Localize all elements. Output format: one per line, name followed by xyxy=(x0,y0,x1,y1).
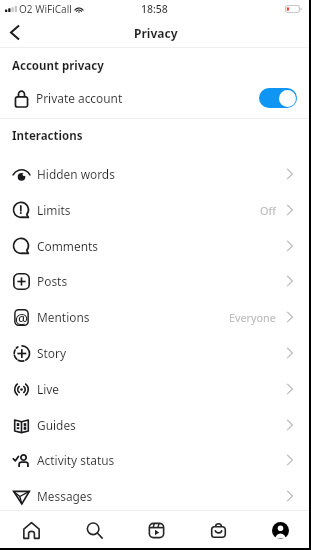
button[interactable]: Live xyxy=(0,371,311,407)
button[interactable]: Comments xyxy=(0,228,311,264)
button[interactable]: @ xyxy=(0,299,311,335)
staticText: Hidden words xyxy=(37,166,115,182)
staticText: Activity status xyxy=(37,452,115,468)
button[interactable]: Shop xyxy=(187,512,249,548)
button[interactable]: Profile xyxy=(249,512,311,548)
button[interactable]: Activity status xyxy=(0,442,311,478)
staticText: @ xyxy=(15,308,29,325)
staticText: Story xyxy=(37,345,66,361)
button[interactable]: Guides xyxy=(0,407,311,443)
staticText: 18:58 xyxy=(141,2,168,16)
button[interactable]: Private account xyxy=(0,86,311,110)
button[interactable]: Posts xyxy=(0,263,311,299)
staticText: Limits xyxy=(37,202,71,218)
button[interactable]: Search xyxy=(63,512,125,548)
staticText: Posts xyxy=(37,273,68,289)
button[interactable]: Home xyxy=(0,512,63,548)
button[interactable]: Reels xyxy=(125,512,187,548)
button[interactable]: Story xyxy=(0,335,311,371)
staticText: Comments xyxy=(37,238,98,254)
staticText: O2 WiFiCall xyxy=(19,2,72,16)
button[interactable]: Messages xyxy=(0,478,311,514)
button[interactable]: Back xyxy=(0,18,30,47)
button[interactable]: Limits xyxy=(0,192,311,228)
button[interactable]: Private account toggle xyxy=(259,88,297,108)
staticText: Guides xyxy=(37,417,76,433)
staticText: Everyone xyxy=(229,310,276,325)
staticText: Private account xyxy=(36,90,123,106)
staticText: Messages xyxy=(37,488,93,504)
staticText: Interactions xyxy=(12,128,83,144)
staticText: Account privacy xyxy=(12,58,104,74)
staticText: Mentions xyxy=(37,309,90,325)
staticText: Live xyxy=(37,381,60,397)
button[interactable]: Hidden words xyxy=(0,156,311,192)
staticText: Privacy xyxy=(134,25,178,41)
staticText: Off xyxy=(260,203,276,218)
